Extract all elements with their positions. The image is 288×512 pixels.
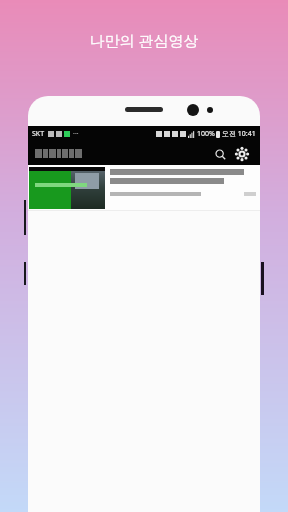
staticText: SKT [32, 129, 45, 139]
staticText: 나만의 관심영상 [0, 30, 288, 50]
staticText: 100% [197, 129, 215, 139]
button[interactable] [28, 165, 260, 210]
button[interactable]: Search [209, 143, 231, 165]
staticText: 오전 10:41 [222, 129, 256, 139]
button[interactable]: Settings [231, 143, 253, 165]
button[interactable] [35, 149, 83, 158]
staticText: ··· [73, 129, 79, 139]
